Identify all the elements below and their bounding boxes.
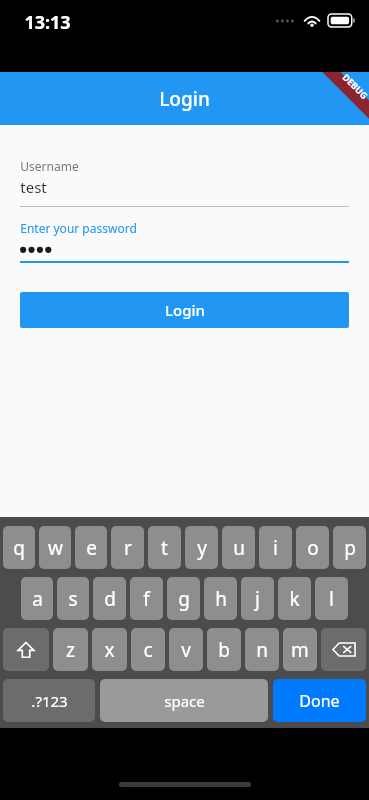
staticText: 13:13 bbox=[24, 10, 71, 35]
staticText: g bbox=[178, 586, 190, 612]
button[interactable]: h bbox=[204, 577, 237, 620]
button[interactable]: t bbox=[148, 526, 181, 569]
staticText: o bbox=[307, 535, 319, 561]
button[interactable]: j bbox=[241, 577, 274, 620]
button[interactable]: p bbox=[333, 526, 366, 569]
button[interactable]: Shift bbox=[3, 628, 49, 671]
button[interactable]: x bbox=[92, 628, 127, 671]
button[interactable]: y bbox=[185, 526, 218, 569]
button[interactable]: f bbox=[130, 577, 163, 620]
button[interactable]: c bbox=[131, 628, 165, 671]
button[interactable]: Done bbox=[273, 679, 366, 722]
staticText: .?123 bbox=[31, 691, 68, 711]
staticText: j bbox=[255, 586, 260, 612]
button[interactable]: q bbox=[3, 526, 35, 569]
staticText: t bbox=[161, 535, 168, 561]
staticText: v bbox=[181, 637, 191, 663]
button[interactable]: i bbox=[259, 526, 292, 569]
staticText: i bbox=[273, 535, 278, 561]
button[interactable]: k bbox=[278, 577, 311, 620]
staticText: h bbox=[215, 586, 227, 612]
staticText: Login bbox=[159, 86, 210, 112]
staticText: m bbox=[291, 637, 309, 663]
button[interactable]: z bbox=[53, 628, 88, 671]
button[interactable]: v bbox=[169, 628, 203, 671]
button[interactable]: a bbox=[21, 577, 53, 620]
button[interactable]: e bbox=[75, 526, 107, 569]
button[interactable]: Login bbox=[20, 292, 349, 328]
staticText: r bbox=[124, 535, 132, 561]
staticText: w bbox=[48, 535, 63, 561]
button[interactable]: Backspace bbox=[321, 628, 366, 671]
staticText: b bbox=[218, 637, 230, 663]
staticText: d bbox=[104, 586, 116, 612]
button[interactable]: g bbox=[167, 577, 200, 620]
button[interactable]: o bbox=[296, 526, 329, 569]
staticText: Enter your password bbox=[20, 220, 137, 236]
staticText: z bbox=[66, 637, 75, 663]
button[interactable]: d bbox=[93, 577, 126, 620]
staticText: Done bbox=[299, 690, 340, 712]
staticText: k bbox=[289, 586, 300, 612]
staticText: space bbox=[164, 691, 205, 711]
staticText: l bbox=[329, 586, 334, 612]
staticText: n bbox=[256, 637, 268, 663]
staticText: e bbox=[86, 535, 97, 561]
staticText: p bbox=[344, 535, 356, 561]
button[interactable]: n bbox=[245, 628, 279, 671]
staticText: Username bbox=[20, 158, 79, 174]
button[interactable]: r bbox=[111, 526, 144, 569]
staticText: a bbox=[32, 586, 43, 612]
staticText: y bbox=[197, 535, 207, 561]
button[interactable]: s bbox=[57, 577, 89, 620]
button[interactable]: .?123 bbox=[3, 679, 95, 722]
button[interactable]: space bbox=[100, 679, 268, 722]
button[interactable]: b bbox=[207, 628, 241, 671]
button[interactable]: l bbox=[315, 577, 348, 620]
staticText: Login bbox=[165, 300, 205, 320]
staticText: q bbox=[13, 535, 25, 561]
button[interactable]: m bbox=[283, 628, 317, 671]
button[interactable]: u bbox=[222, 526, 255, 569]
staticText: x bbox=[104, 637, 115, 663]
staticText: c bbox=[143, 637, 153, 663]
button[interactable]: w bbox=[39, 526, 71, 569]
staticText: DEBUG bbox=[340, 71, 369, 101]
staticText: s bbox=[68, 586, 78, 612]
staticText: u bbox=[233, 535, 245, 561]
staticText: test bbox=[20, 177, 47, 197]
staticText: f bbox=[143, 586, 150, 612]
